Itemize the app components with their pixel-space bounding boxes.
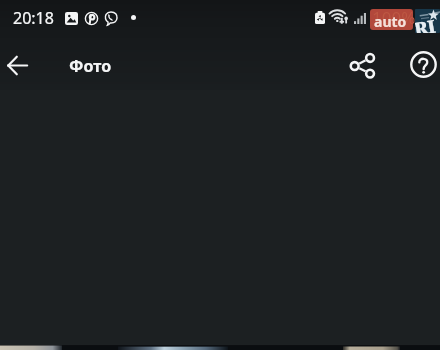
- button[interactable]: Share: [339, 42, 385, 88]
- staticText: 100%: [372, 6, 416, 29]
- staticText: RIA: [415, 13, 440, 33]
- staticText: 20:18: [13, 7, 54, 29]
- button[interactable]: Help: [400, 41, 440, 87]
- button[interactable]: Back: [0, 42, 40, 88]
- staticText: auto: [374, 12, 407, 31]
- staticText: Фото: [69, 55, 112, 77]
